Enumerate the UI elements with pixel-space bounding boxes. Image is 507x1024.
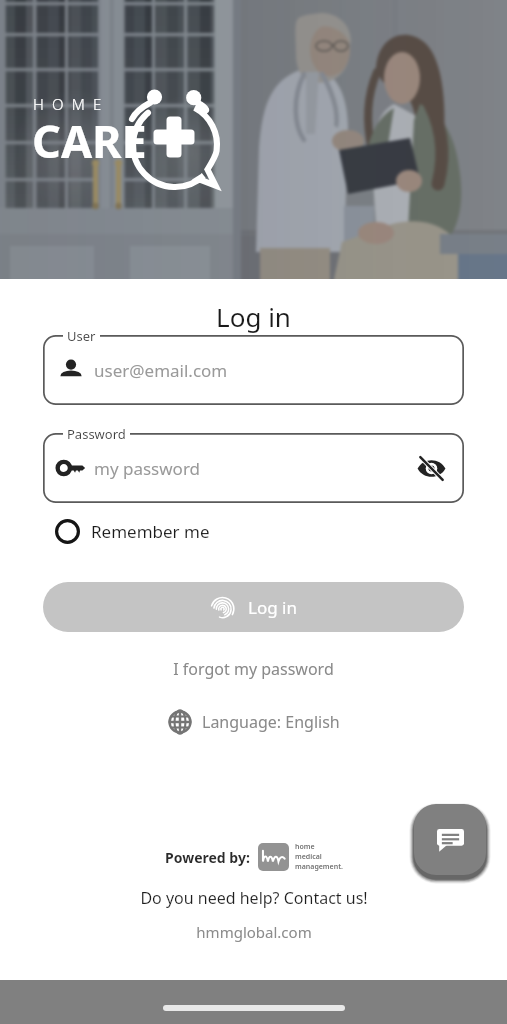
staticText: Password (67, 425, 126, 443)
button[interactable]: Chat with us (414, 804, 486, 875)
button[interactable]: I forgot my password (161, 651, 346, 687)
staticText: Log in (0, 299, 507, 334)
staticText: Remember me (91, 520, 210, 543)
staticText: Powered by: (165, 848, 250, 867)
staticText: user@email.com (94, 359, 228, 382)
staticText: my password (94, 457, 201, 480)
staticText: CARE (32, 110, 147, 171)
button[interactable]: Language: English (161, 703, 346, 741)
button[interactable]: Log in (43, 582, 464, 632)
staticText: medical (295, 852, 322, 862)
staticText: HOME (33, 94, 110, 114)
staticText: home (295, 842, 315, 852)
button[interactable]: hmmglobal.com (184, 916, 324, 948)
staticText: Log in (248, 596, 297, 619)
button[interactable]: Show password (413, 450, 450, 487)
staticText: Language: English (202, 711, 340, 733)
button[interactable]: Do you need help? Contact us! (128, 881, 380, 915)
staticText: User (67, 327, 96, 345)
button[interactable]: Remember me (43, 515, 220, 548)
staticText: management. (295, 862, 343, 872)
